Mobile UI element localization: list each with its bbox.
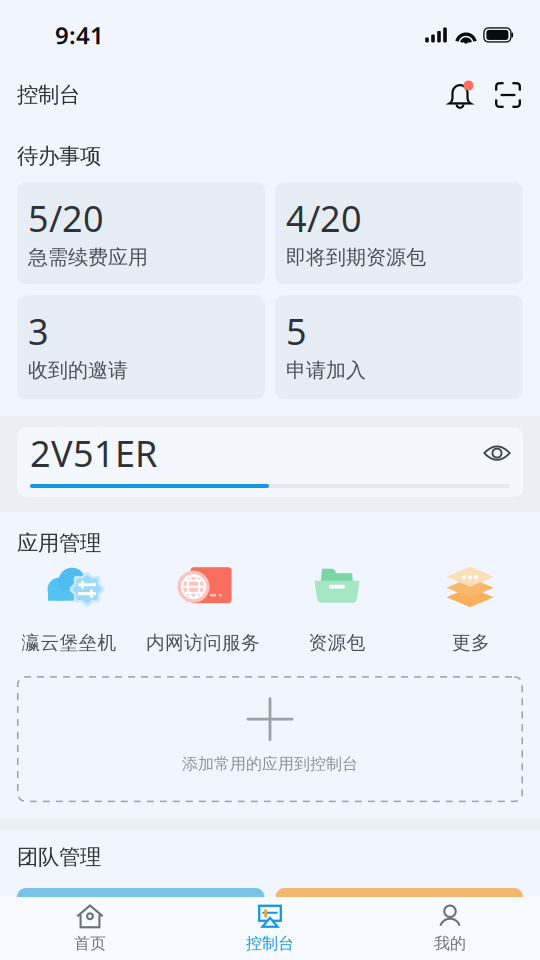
staticText: 瀛云堡垒机 bbox=[21, 631, 116, 654]
button[interactable]: 瀛云堡垒机 bbox=[2, 560, 136, 654]
staticText: 待办事项 bbox=[17, 143, 101, 169]
staticText: 收到的邀请 bbox=[28, 358, 128, 383]
staticText: 2V51ER bbox=[30, 429, 157, 477]
staticText: 5 bbox=[286, 307, 307, 355]
button[interactable]: 5 bbox=[275, 295, 523, 399]
staticText: 应用管理 bbox=[17, 530, 101, 556]
staticText: 控制台 bbox=[17, 82, 80, 108]
staticText: 首页 bbox=[74, 934, 106, 953]
button[interactable]: 4/20 bbox=[275, 182, 523, 284]
button[interactable]: 显示邀请码 bbox=[482, 440, 512, 466]
button[interactable]: 扫一扫 bbox=[488, 75, 528, 115]
button[interactable]: 添加常用的应用到控制台 bbox=[17, 676, 523, 802]
staticText: 4/20 bbox=[286, 194, 362, 242]
button[interactable]: 首页 bbox=[0, 897, 180, 960]
staticText: 9:41 bbox=[55, 19, 104, 51]
staticText: 3 bbox=[28, 307, 49, 355]
button[interactable]: 5/20 bbox=[17, 182, 265, 284]
staticText: 添加常用的应用到控制台 bbox=[182, 754, 358, 774]
staticText: 团队管理 bbox=[17, 844, 101, 870]
staticText: 申请加入 bbox=[286, 358, 366, 383]
staticText: 内网访问服务 bbox=[146, 631, 260, 654]
staticText: 即将到期资源包 bbox=[286, 245, 426, 270]
button[interactable]: 更多 bbox=[404, 560, 538, 654]
button[interactable]: 资源包 bbox=[270, 560, 404, 654]
staticText: 控制台 bbox=[246, 934, 294, 953]
button[interactable]: 3 bbox=[17, 295, 265, 399]
staticText: 5/20 bbox=[28, 194, 104, 242]
staticText: 急需续费应用 bbox=[28, 245, 148, 270]
button[interactable]: 我的 bbox=[360, 897, 540, 960]
button[interactable]: 通知 bbox=[440, 75, 480, 115]
staticText: 更多 bbox=[452, 631, 490, 654]
staticText: 我的 bbox=[434, 934, 466, 953]
button[interactable]: 内网访问服务 bbox=[136, 560, 270, 654]
staticText: 资源包 bbox=[308, 631, 365, 654]
button[interactable]: 控制台 bbox=[180, 897, 360, 960]
